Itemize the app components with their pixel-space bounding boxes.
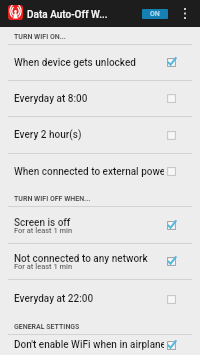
button[interactable]: Don't enable WiFi when in airplane mode	[0, 335, 200, 355]
button[interactable]: Every 2 hour(s)	[0, 117, 200, 153]
staticText: For at least 1 min	[14, 226, 73, 235]
staticText: When device gets unlocked	[14, 57, 136, 69]
button[interactable]: Not connected to any network	[0, 244, 200, 279]
staticText: Data Auto-Off W...	[27, 9, 108, 21]
staticText: Everyday at 8:00	[14, 93, 88, 105]
button[interactable]: When device gets unlocked	[0, 45, 200, 80]
button[interactable]: ON	[142, 9, 168, 19]
staticText: Every 2 hour(s)	[14, 129, 82, 141]
staticText: TURN WIFI ON...	[14, 33, 66, 41]
button[interactable]: More options	[178, 0, 192, 27]
button[interactable]: Everyday at 8:00	[0, 81, 200, 116]
staticText: TURN WIFI OFF WHEN...	[14, 195, 91, 203]
staticText: ON	[150, 10, 160, 18]
staticText: When connected to external power	[14, 166, 164, 178]
button[interactable]: Screen is off	[0, 207, 200, 243]
staticText: Not connected to any network	[14, 253, 148, 265]
staticText: GENERAL SETTINGS	[14, 323, 80, 331]
staticText: For at least 1 min	[14, 262, 73, 271]
staticText: Screen is off	[14, 217, 71, 229]
staticText: Everyday at 22:00	[14, 293, 94, 305]
button[interactable]: Everyday at 22:00	[0, 280, 200, 318]
staticText: Don't enable WiFi when in airplane mode	[14, 339, 164, 351]
button[interactable]: When connected to external power	[0, 154, 200, 189]
